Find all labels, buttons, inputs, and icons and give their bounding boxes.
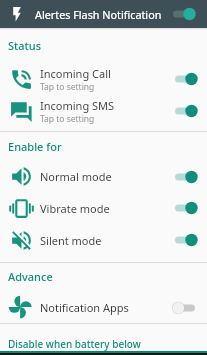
staticText: Silent mode (40, 233, 102, 248)
staticText: Enable for (8, 139, 62, 154)
staticText: Incoming Call (40, 66, 111, 81)
button[interactable]: Incoming SMS (0, 95, 207, 127)
staticText: Normal mode (40, 169, 112, 184)
button[interactable] (172, 168, 198, 186)
button[interactable]: Vibrate mode (0, 192, 207, 224)
staticText: Advance (8, 269, 53, 284)
staticText: Alertes Flash Notification (35, 7, 162, 22)
button[interactable]: Incoming Call (0, 63, 207, 95)
staticText: Tap to setting (40, 81, 95, 93)
staticText: Status (8, 38, 42, 53)
button[interactable]: Disable when battery below (8, 337, 207, 351)
button[interactable] (172, 70, 198, 88)
button[interactable] (172, 231, 198, 249)
button[interactable]: Silent mode (0, 224, 207, 256)
button[interactable]: Notification Apps (0, 292, 207, 323)
button[interactable] (172, 102, 198, 120)
staticText: Incoming SMS (40, 98, 115, 113)
staticText: Tap to setting (40, 113, 95, 125)
staticText: Notification Apps (40, 300, 129, 315)
staticText: Vibrate mode (40, 201, 110, 216)
staticText: Disable when battery below (8, 337, 141, 351)
button[interactable] (172, 199, 198, 217)
button[interactable]: Normal mode (0, 161, 207, 192)
button[interactable] (170, 5, 196, 23)
button[interactable] (172, 299, 198, 317)
